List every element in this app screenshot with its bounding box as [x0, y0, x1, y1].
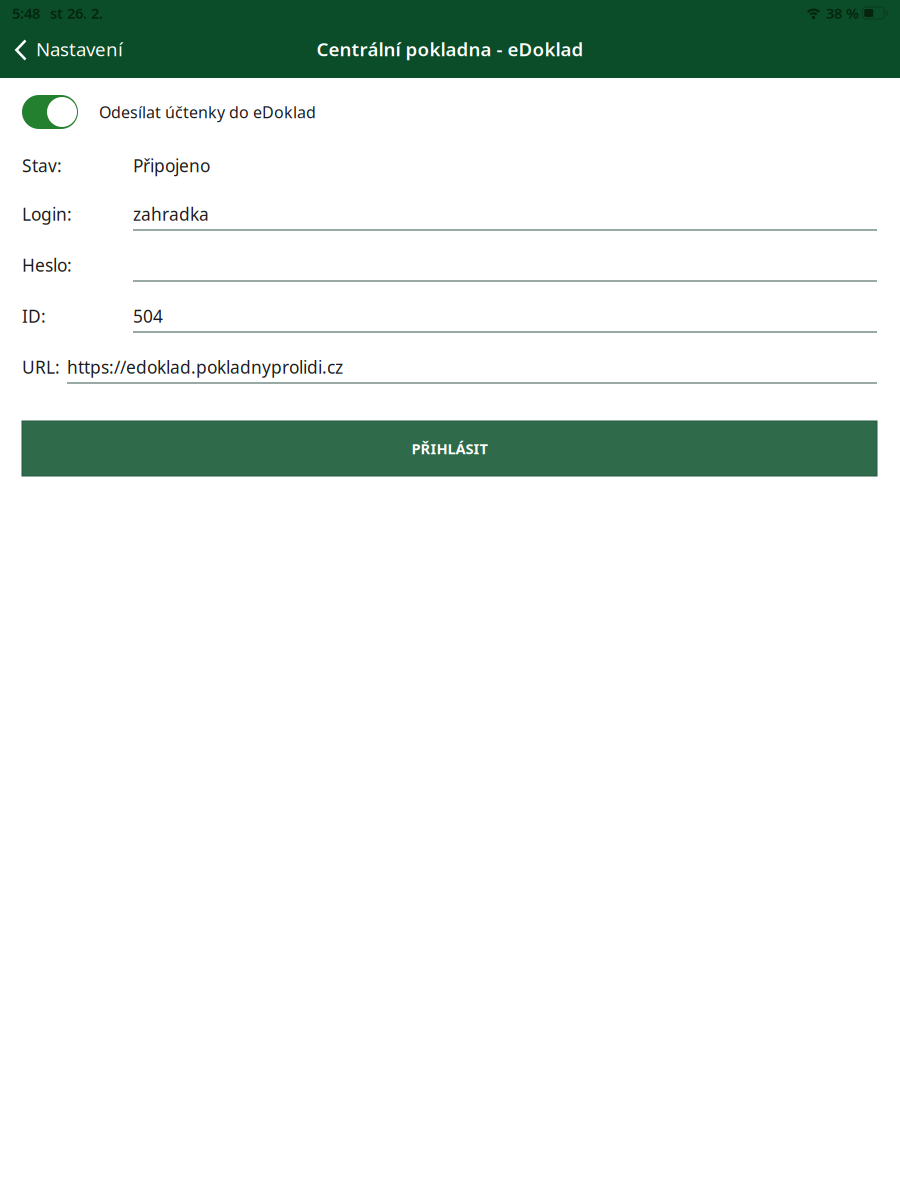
staticText: Odesílat účtenky do eDoklad	[99, 101, 316, 123]
staticText: Centrální pokladna - eDoklad	[316, 37, 583, 61]
staticText: Login:	[22, 202, 72, 225]
staticText: URL:	[22, 355, 60, 378]
staticText: Stav:	[22, 154, 62, 177]
staticText: Nastavení	[36, 37, 123, 61]
staticText: ID:	[22, 304, 46, 327]
staticText: 5:48	[12, 3, 40, 23]
staticText: st 26. 2.	[50, 3, 103, 23]
staticText: 38 %	[826, 3, 859, 23]
staticText: 504	[133, 304, 163, 327]
staticText: PŘIHLÁSIT	[411, 439, 487, 458]
staticText: Heslo:	[22, 253, 72, 276]
staticText: https://edoklad.pokladnyprolidi.cz	[67, 355, 343, 378]
button[interactable]: Odesílat účtenky do eDoklad	[22, 95, 78, 129]
staticText: Připojeno	[133, 154, 210, 177]
button[interactable]: Nastavení	[0, 28, 135, 78]
staticText: zahradka	[133, 202, 209, 225]
button[interactable]: PŘIHLÁSIT	[22, 421, 877, 476]
